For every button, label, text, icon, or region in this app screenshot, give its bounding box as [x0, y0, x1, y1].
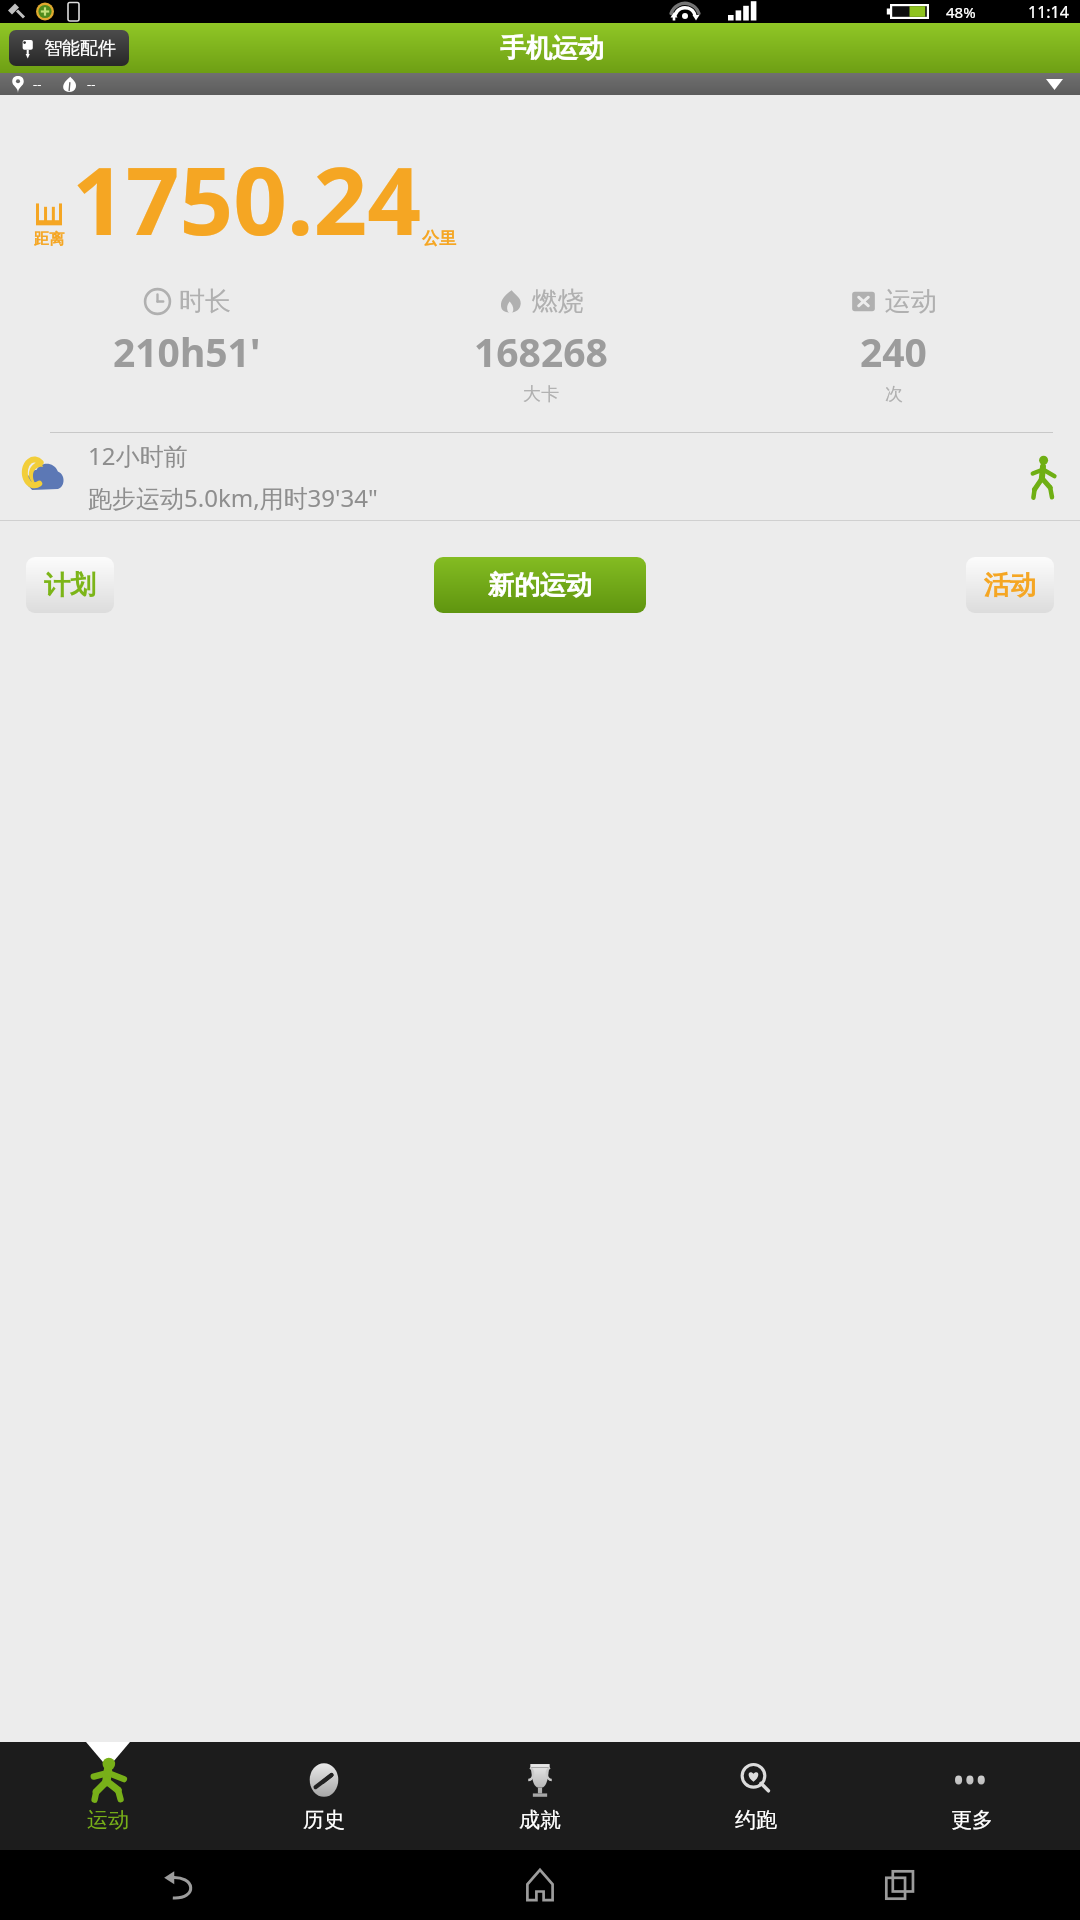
staticText: 新的运动	[488, 569, 592, 602]
staticText: 燃烧	[532, 285, 584, 318]
button[interactable]: 活动	[966, 557, 1054, 613]
staticText: 成就	[519, 1807, 561, 1833]
staticText: --	[33, 75, 42, 93]
button[interactable]: 12小时前	[0, 433, 1080, 520]
staticText: 计划	[44, 569, 96, 602]
button[interactable]: Back	[0, 1850, 360, 1920]
staticText: 大卡	[523, 383, 559, 406]
other: Expand	[1046, 79, 1063, 90]
button[interactable]: 更多	[864, 1742, 1080, 1850]
staticText: 240	[860, 325, 927, 378]
button[interactable]: 新的运动	[434, 557, 646, 613]
staticText: 运动	[885, 285, 937, 318]
staticText: 次	[885, 383, 903, 406]
staticText: 历史	[303, 1807, 345, 1833]
button[interactable]: 智能配件	[9, 30, 129, 66]
staticText: 手机运动	[500, 32, 604, 65]
staticText: 11:14	[1028, 1, 1069, 23]
staticText: 12小时前	[88, 439, 188, 472]
staticText: 时长	[179, 285, 231, 318]
staticText: 1750.24	[72, 135, 422, 263]
staticText: 活动	[984, 569, 1036, 602]
staticText: 跑步运动5.0km,用时39'34"	[88, 481, 378, 514]
button[interactable]: 成就	[432, 1742, 648, 1850]
staticText: 约跑	[735, 1807, 777, 1833]
button[interactable]: 约跑	[648, 1742, 864, 1850]
staticText: 更多	[951, 1807, 993, 1833]
button[interactable]: --	[0, 73, 1080, 95]
staticText: 运动	[87, 1807, 129, 1833]
button[interactable]: Home	[360, 1850, 720, 1920]
button[interactable]: Recent apps	[720, 1850, 1080, 1920]
staticText: 168268	[474, 325, 608, 378]
staticText: --	[87, 75, 96, 93]
other: Running	[1028, 455, 1058, 499]
button[interactable]: 计划	[26, 557, 114, 613]
button[interactable]: 运动	[0, 1742, 216, 1850]
button[interactable]: 历史	[216, 1742, 432, 1850]
staticText: 距离	[34, 230, 64, 249]
staticText: 公里	[422, 228, 456, 249]
staticText: 48%	[946, 2, 976, 22]
staticText: 智能配件	[44, 37, 116, 60]
staticText: 210h51'	[113, 325, 261, 378]
